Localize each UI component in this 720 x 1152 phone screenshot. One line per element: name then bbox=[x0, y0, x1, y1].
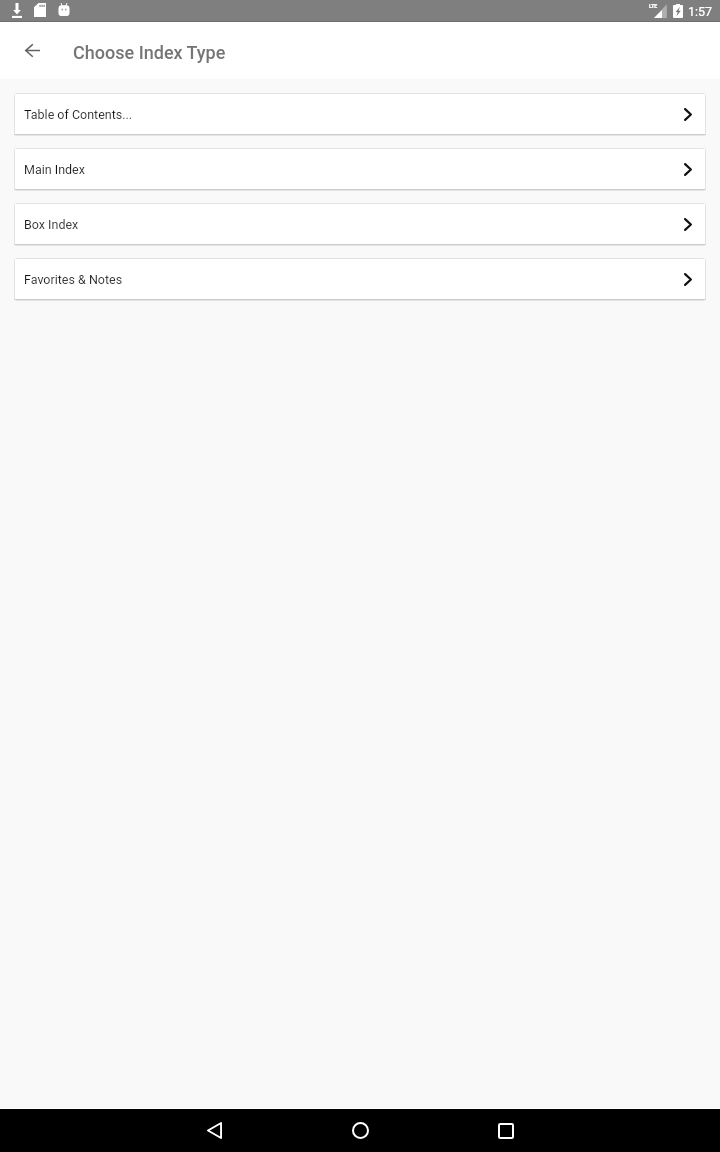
staticText: 1:57 bbox=[688, 4, 713, 19]
staticText: LTE bbox=[649, 3, 658, 9]
staticText: Main Index bbox=[24, 162, 85, 177]
button[interactable]: Table of Contents... bbox=[14, 93, 706, 136]
staticText: Favorites & Notes bbox=[24, 272, 123, 287]
staticText: Box Index bbox=[24, 217, 79, 232]
button[interactable]: Back bbox=[192, 1109, 236, 1152]
staticText: Choose Index Type bbox=[73, 42, 226, 63]
button[interactable]: Box Index bbox=[14, 203, 706, 246]
button[interactable]: Navigate up bbox=[8, 26, 56, 74]
button[interactable]: Main Index bbox=[14, 148, 706, 191]
button[interactable]: Home bbox=[338, 1109, 382, 1152]
button[interactable]: Favorites & Notes bbox=[14, 258, 706, 301]
button[interactable]: Recent apps bbox=[484, 1109, 528, 1152]
staticText: Table of Contents... bbox=[24, 107, 133, 122]
